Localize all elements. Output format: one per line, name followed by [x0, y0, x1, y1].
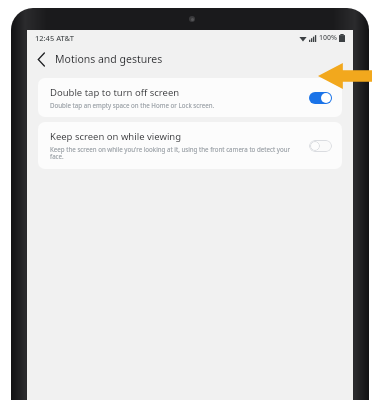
staticText: Keep screen on while viewing: [50, 130, 182, 143]
button[interactable]: Keep screen on while viewing: [38, 122, 342, 169]
button[interactable]: Double tap to turn off screen: [38, 78, 342, 117]
staticText: 100%: [319, 33, 337, 43]
staticText: Keep the screen on while you're looking …: [50, 145, 301, 161]
button[interactable]: Off: [309, 140, 332, 152]
staticText: Double tap to turn off screen: [50, 86, 180, 99]
staticText: 12:45 AT&T: [35, 33, 74, 43]
staticText: Double tap an empty space on the Home or…: [50, 101, 215, 109]
button[interactable]: On: [309, 92, 332, 104]
staticText: Motions and gestures: [55, 52, 163, 66]
button[interactable]: Back: [30, 48, 52, 70]
